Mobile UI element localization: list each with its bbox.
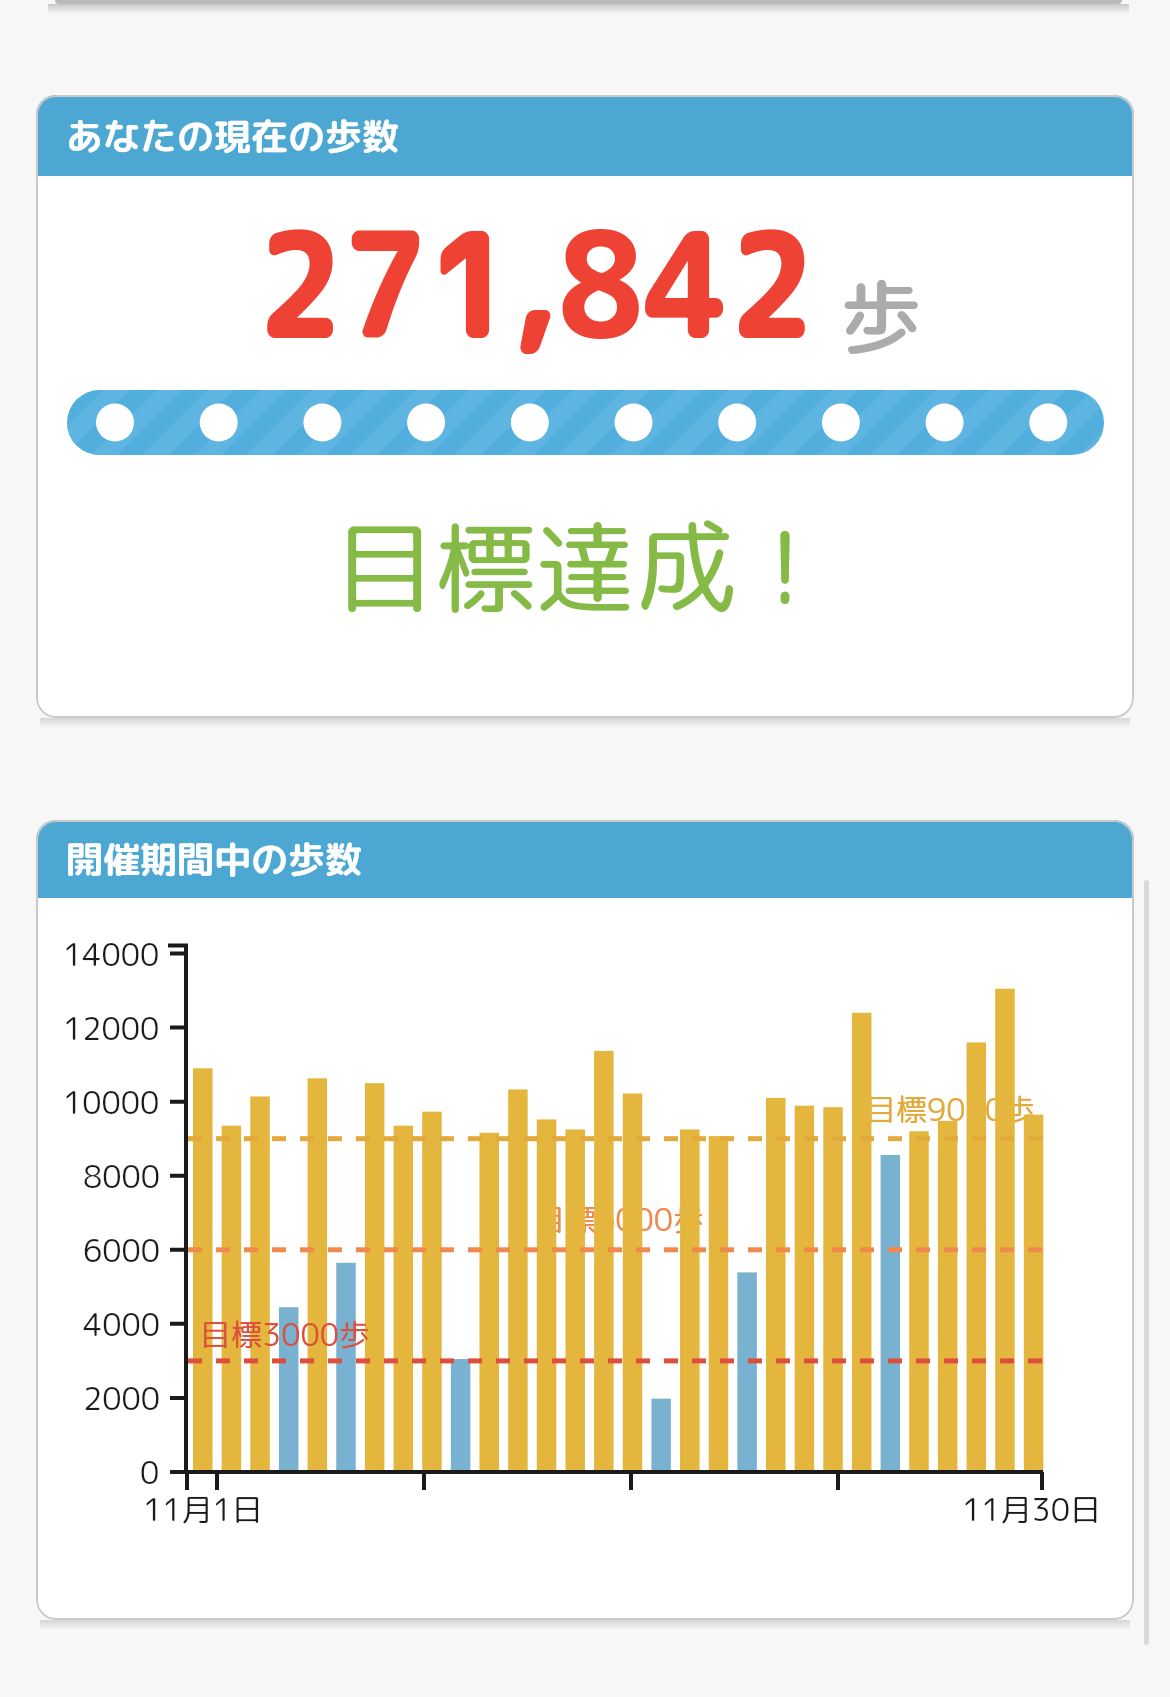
staticText: 14000	[63, 933, 160, 976]
staticText: 271,842	[257, 181, 815, 385]
staticText: 目標6000歩	[534, 1198, 704, 1241]
staticText: 目標達成！	[335, 496, 835, 636]
button[interactable]: あなたの現在の歩数	[36, 95, 1134, 718]
staticText: 10000	[63, 1081, 160, 1124]
staticText: 12000	[63, 1007, 160, 1050]
staticText: 11月30日	[962, 1488, 1101, 1531]
staticText: 歩	[840, 259, 923, 373]
button[interactable]: 開催期間中の歩数	[36, 820, 1134, 1620]
staticText: 4000	[83, 1303, 160, 1346]
staticText: あなたの現在の歩数	[66, 110, 399, 162]
staticText: 目標9000歩	[865, 1088, 1035, 1131]
staticText: 6000	[83, 1229, 160, 1272]
staticText: 8000	[83, 1155, 160, 1198]
staticText: 11月1日	[143, 1488, 263, 1531]
staticText: 2000	[83, 1377, 160, 1420]
staticText: 開催期間中の歩数	[66, 833, 362, 885]
staticText: 0	[140, 1451, 160, 1494]
staticText: 目標3000歩	[200, 1313, 370, 1356]
